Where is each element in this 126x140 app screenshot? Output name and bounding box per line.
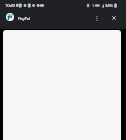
staticText: 10:49 [5, 3, 15, 9]
button[interactable]: More options [89, 9, 104, 27]
staticText: PayPal [18, 16, 30, 22]
button[interactable]: Close [106, 9, 121, 27]
staticText: 34% [105, 3, 113, 9]
